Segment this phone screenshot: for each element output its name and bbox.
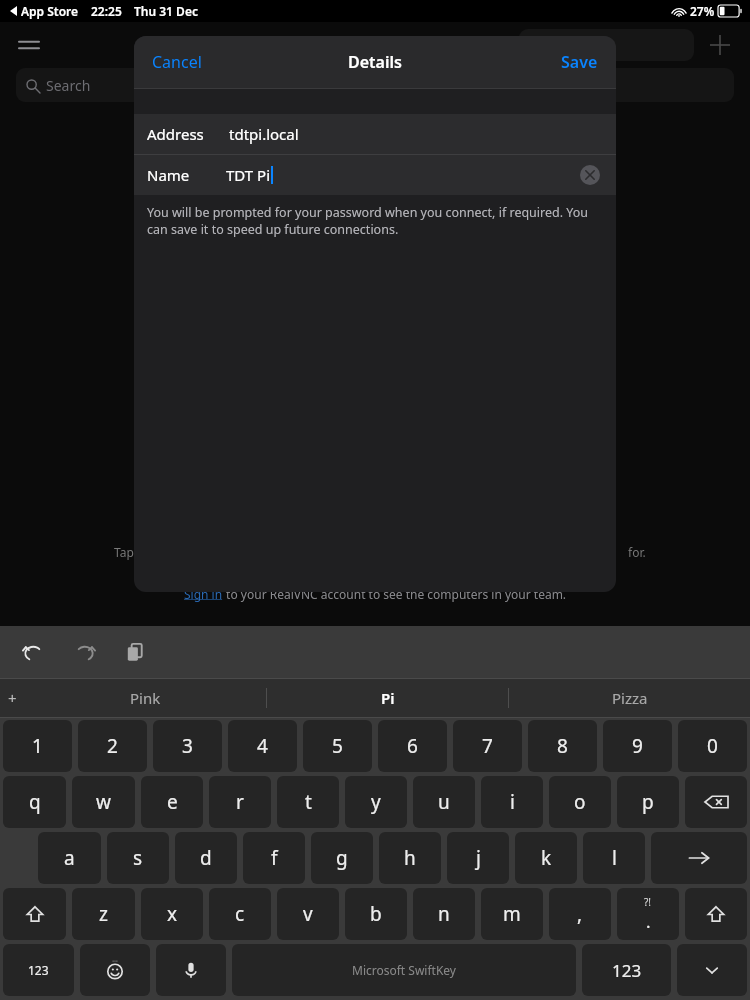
staticText: d (200, 845, 212, 871)
button[interactable]: l (583, 832, 645, 884)
staticText: v (303, 901, 313, 927)
staticText: n (438, 901, 450, 927)
staticText: z (99, 901, 108, 927)
button[interactable]: Enter (651, 832, 747, 884)
button[interactable]: o (549, 776, 611, 828)
staticText: 27% (690, 3, 715, 19)
button[interactable]: d (175, 832, 237, 884)
button[interactable]: t (277, 776, 339, 828)
button[interactable]: ?! (617, 888, 679, 940)
button[interactable]: 8 (528, 720, 597, 772)
button[interactable]: Name (134, 155, 616, 195)
staticText: 2 (107, 733, 118, 759)
staticText: Pizza (612, 688, 648, 708)
staticText: Thu 31 Dec (134, 3, 198, 19)
button[interactable]: Undo (18, 637, 48, 667)
button[interactable]: c (209, 888, 271, 940)
button[interactable]: Voice input (156, 944, 226, 996)
button[interactable]: 2 (78, 720, 147, 772)
button[interactable]: Clipboard (120, 637, 150, 667)
button[interactable]: 7 (453, 720, 522, 772)
button[interactable]: f (243, 832, 305, 884)
staticText: 3 (182, 733, 193, 759)
button[interactable]: Hide keyboard (677, 944, 747, 996)
staticText: 123 (612, 959, 642, 982)
button[interactable]: Sign in (184, 586, 223, 602)
button[interactable]: 123 (582, 944, 671, 996)
button[interactable]: w (72, 776, 135, 828)
button[interactable]: v (277, 888, 339, 940)
button[interactable]: y (345, 776, 407, 828)
button[interactable]: j (447, 832, 509, 884)
button[interactable]: 4 (228, 720, 297, 772)
button[interactable]: 1 (3, 720, 72, 772)
button[interactable]: Save (561, 51, 598, 73)
button[interactable]: b (345, 888, 407, 940)
staticText: for. (628, 544, 646, 560)
button[interactable]: Shift (3, 888, 66, 940)
button[interactable]: Add (706, 31, 734, 59)
button[interactable]: k (515, 832, 577, 884)
staticText: h (404, 845, 416, 871)
button[interactable]: m (481, 888, 543, 940)
button[interactable]: Shift (685, 888, 747, 940)
button[interactable]: h (379, 832, 441, 884)
button[interactable]: 6 (378, 720, 447, 772)
staticText: ?! (644, 895, 652, 909)
staticText: g (336, 845, 348, 871)
staticText: i (510, 789, 515, 815)
staticText: y (371, 789, 381, 815)
button[interactable]: 123 (3, 944, 74, 996)
staticText: tdtpi.local (229, 124, 299, 144)
staticText: Microsoft SwiftKey (352, 962, 456, 978)
button[interactable]: Address (134, 114, 616, 154)
button[interactable]: 5 (303, 720, 372, 772)
button[interactable]: 0 (678, 720, 747, 772)
staticText: t (305, 789, 312, 815)
button[interactable]: s (107, 832, 169, 884)
button[interactable]: Redo (70, 637, 100, 667)
button[interactable]: Microsoft SwiftKey (232, 944, 576, 996)
button[interactable]: n (413, 888, 475, 940)
button[interactable]: 9 (603, 720, 672, 772)
button[interactable]: Backspace (685, 776, 747, 828)
button[interactable]: z (72, 888, 135, 940)
staticText: , (577, 901, 583, 927)
staticText: 7 (482, 733, 493, 759)
button[interactable]: Search (16, 68, 734, 102)
button[interactable]: Emoji (80, 944, 150, 996)
staticText: 5 (332, 733, 343, 759)
staticText: Pi (381, 688, 395, 708)
button[interactable]: Pink (24, 679, 266, 717)
button[interactable]: a (38, 832, 101, 884)
staticText: 0 (707, 733, 718, 759)
staticText: s (133, 845, 143, 871)
button[interactable]: q (3, 776, 66, 828)
staticText: f (271, 845, 278, 871)
button[interactable]: + (8, 688, 17, 708)
button[interactable]: Menu (14, 30, 44, 60)
staticText: Address Book (318, 34, 432, 57)
button[interactable]: Pizza (509, 679, 750, 717)
button[interactable]: 3 (153, 720, 222, 772)
staticText: l (612, 845, 617, 871)
staticText: TDT Pi (226, 165, 271, 185)
button[interactable]: u (413, 776, 475, 828)
staticText: b (370, 901, 382, 927)
button[interactable]: i (481, 776, 543, 828)
button[interactable]: Cancel (152, 51, 202, 73)
staticText: 8 (557, 733, 568, 759)
button[interactable]: x (141, 888, 203, 940)
button[interactable]: Clear text (580, 165, 600, 185)
staticText: o (574, 789, 586, 815)
button[interactable]: g (311, 832, 373, 884)
staticText: Tap (114, 544, 134, 560)
button[interactable]: r (209, 776, 271, 828)
button[interactable]: , (549, 888, 611, 940)
button[interactable]: e (141, 776, 203, 828)
staticText: Details (348, 51, 402, 73)
staticText: c (235, 901, 245, 927)
button[interactable]: Pi (267, 679, 508, 717)
staticText: Name (147, 165, 190, 185)
button[interactable]: p (617, 776, 679, 828)
